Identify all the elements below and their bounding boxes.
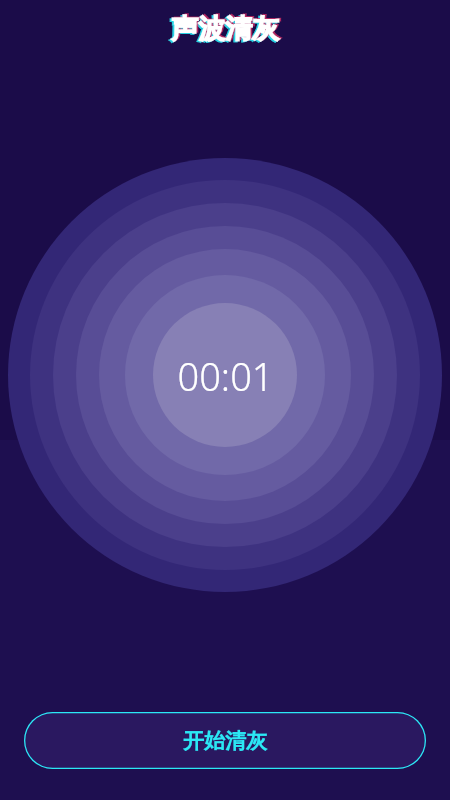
staticText: 开始清灰 bbox=[183, 728, 267, 754]
staticText: 声波清灰 bbox=[171, 12, 279, 46]
staticText: 声波清灰 bbox=[169, 13, 277, 47]
staticText: 声波清灰 bbox=[173, 11, 281, 45]
staticText: 00:01 bbox=[177, 350, 274, 402]
button[interactable]: 开始清灰 bbox=[24, 712, 426, 769]
